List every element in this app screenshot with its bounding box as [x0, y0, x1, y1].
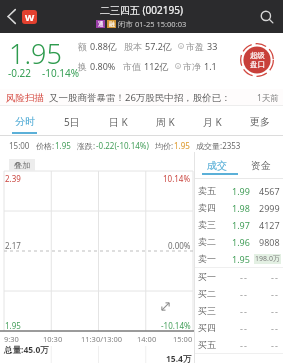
staticText: 资金 [251, 159, 271, 172]
staticText: 通 [98, 21, 104, 28]
staticText: 2.39 [5, 173, 21, 184]
button[interactable]: 分时 [0, 108, 48, 136]
staticText: 2.17 [5, 240, 21, 251]
staticText: 盘口 [250, 60, 265, 69]
staticText: 融 [109, 21, 115, 28]
button[interactable]: 买三 [195, 302, 283, 319]
staticText: 14:00 [137, 334, 157, 344]
staticText: 买一 [198, 271, 216, 282]
staticText: -0.22(-10.14%) [96, 140, 149, 151]
staticText: 成交量:2353 [196, 140, 241, 151]
button[interactable]: 超级盘口 [240, 43, 274, 77]
staticText: 叠加 [14, 160, 30, 170]
staticText: 2999 [259, 202, 280, 214]
staticText: 换 [78, 61, 87, 72]
staticText: 0.00% [168, 240, 191, 251]
staticText: 买五 [198, 339, 216, 350]
staticText: 卖三 [198, 219, 216, 230]
staticText: -0.22 [8, 66, 32, 80]
button[interactable]: 周 K [142, 108, 189, 136]
staticText: -- [271, 339, 280, 351]
button[interactable]: Search [251, 0, 283, 33]
staticText: -10.14% [161, 320, 191, 331]
staticText: 又一股商誉暴雷！26万股民中招，股价已： [49, 91, 257, 104]
staticText: -- [240, 288, 249, 300]
staticText: 卖四 [198, 202, 216, 213]
staticText: -- [240, 305, 249, 317]
staticText: W [25, 11, 35, 24]
button[interactable]: 卖四 [195, 199, 283, 216]
staticText: 15:00 [9, 140, 30, 151]
staticText: 涨跌: [77, 140, 96, 151]
button[interactable]: 资金 [239, 152, 283, 178]
button[interactable]: 成交 [195, 152, 239, 178]
staticText: 总量:45.0万 [4, 344, 49, 356]
staticText: 卖一 [198, 253, 216, 264]
staticText: -10.14% [42, 66, 80, 80]
staticText: 10.14% [163, 173, 191, 184]
button[interactable]: 买五 [195, 336, 283, 353]
button[interactable]: Back [0, 0, 22, 33]
staticText: 33 [207, 40, 218, 52]
staticText: 1.95 [174, 140, 190, 151]
staticText: -- [240, 322, 249, 334]
staticText: -- [271, 288, 280, 300]
staticText: 二三四五 (002195) [100, 3, 183, 17]
staticText: 5日 [64, 115, 80, 129]
staticText: 198.0万 [255, 254, 280, 264]
button[interactable]: 买一 [195, 268, 283, 285]
staticText: 15.4万 [166, 353, 192, 363]
button[interactable]: 卖五 [195, 182, 283, 199]
staticText: -- [271, 271, 280, 283]
staticText: 卖五 [198, 185, 216, 196]
staticText: 均价: [155, 140, 174, 151]
staticText: 买二 [198, 288, 216, 299]
staticText: 1.95 [232, 253, 250, 265]
staticText: 112亿 [144, 60, 169, 72]
staticText: 0.88亿 [90, 40, 117, 52]
button[interactable]: 更多 [236, 108, 283, 136]
button[interactable]: 风险扫描 [0, 89, 283, 106]
button[interactable]: 买四 [195, 319, 283, 336]
staticText: 0.80% [90, 60, 116, 72]
staticText: 1.98 [232, 202, 250, 214]
staticText: 15:00 [173, 334, 193, 344]
button[interactable]: 卖三 [195, 216, 283, 233]
button[interactable]: 叠加 [9, 159, 35, 171]
button[interactable]: 卖一 [195, 250, 283, 267]
staticText: 57.2亿 [145, 40, 172, 52]
staticText: 11:30/13:00 [81, 334, 123, 344]
staticText: -- [240, 271, 249, 283]
staticText: 市盈 [186, 41, 204, 52]
staticText: 9:30 [4, 334, 19, 344]
staticText: 1.97 [232, 219, 250, 231]
staticText: 股本 [124, 41, 142, 52]
button[interactable]: 卖二 [195, 233, 283, 250]
button[interactable]: 月 K [189, 108, 236, 136]
staticText: 市净 [183, 61, 201, 72]
staticText: 1.1 [204, 60, 217, 72]
button[interactable]: App home [22, 10, 37, 24]
button[interactable]: 日 K [95, 108, 142, 136]
staticText: 买三 [198, 305, 216, 316]
staticText: 分时 [15, 115, 35, 128]
staticText: 4567 [259, 185, 280, 197]
staticText: 更多 [250, 115, 270, 128]
staticText: 1天前 [257, 92, 279, 104]
staticText: 风险扫描 [6, 92, 44, 104]
button[interactable]: Fullscreen chart [159, 300, 172, 313]
staticText: 1.95 [5, 320, 21, 331]
staticText: -- [271, 322, 280, 334]
staticText: 买四 [198, 322, 216, 333]
staticText: 1.96 [232, 236, 250, 248]
staticText: 成交 [207, 159, 227, 172]
staticText: 1.95 [9, 35, 62, 72]
button[interactable]: 5日 [48, 108, 95, 136]
button[interactable]: 买二 [195, 285, 283, 302]
staticText: 额 [78, 41, 87, 52]
staticText: 卖二 [198, 236, 216, 247]
staticText: 超级 [250, 51, 265, 60]
staticText: 日 K [109, 115, 128, 129]
staticText: 4127 [259, 219, 280, 231]
staticText: 周 K [156, 115, 175, 129]
